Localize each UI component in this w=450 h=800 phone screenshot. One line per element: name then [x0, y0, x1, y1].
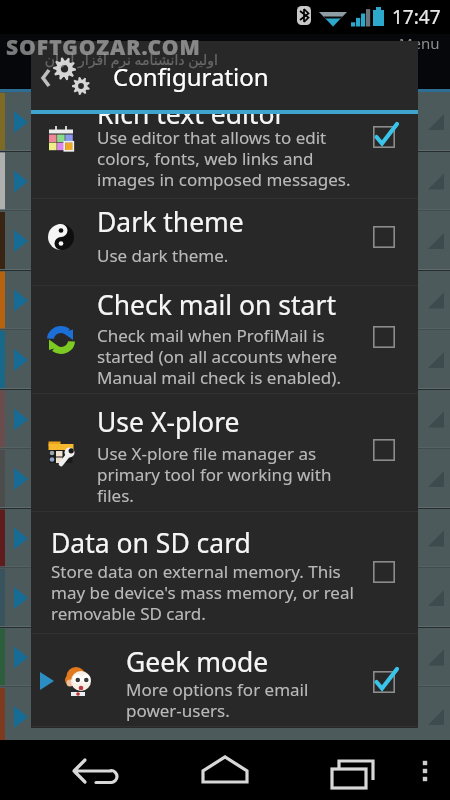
staticText: Use editor that allows to edit colors, f…: [97, 126, 351, 191]
button[interactable]: [31, 286, 418, 394]
staticText: Configuration: [113, 60, 269, 93]
staticText: Menu: [399, 33, 440, 53]
staticText: Use X-plore: [97, 404, 240, 440]
button[interactable]: Back: [0, 740, 160, 800]
button[interactable]: Back: [31, 41, 418, 110]
button[interactable]: [31, 512, 418, 634]
staticText: Check mail on start: [97, 287, 336, 323]
button[interactable]: Recents: [290, 740, 400, 800]
button[interactable]: [31, 634, 418, 727]
button[interactable]: Home: [160, 740, 290, 800]
staticText: Check mail when ProfiMail is started (on…: [97, 324, 341, 389]
staticText: 17:47: [392, 4, 441, 30]
button[interactable]: More options: [400, 740, 450, 800]
staticText: Dark theme: [97, 204, 244, 240]
staticText: SOFTGOZAR.COM: [6, 33, 201, 62]
staticText: اولین دانشنامه نرم افزار ایران: [2, 50, 218, 69]
staticText: Geek mode: [126, 644, 269, 680]
staticText: Rich text editor: [97, 114, 286, 132]
staticText: Data on SD card: [51, 525, 251, 561]
button[interactable]: [31, 394, 418, 512]
button[interactable]: [31, 114, 418, 199]
staticText: Use X-plore file manager as primary tool…: [97, 442, 332, 507]
staticText: Use dark theme.: [97, 244, 229, 267]
staticText: More options for email power-users.: [126, 678, 309, 722]
staticText: Store data on external memory. This may …: [51, 560, 354, 625]
button[interactable]: [31, 199, 418, 286]
